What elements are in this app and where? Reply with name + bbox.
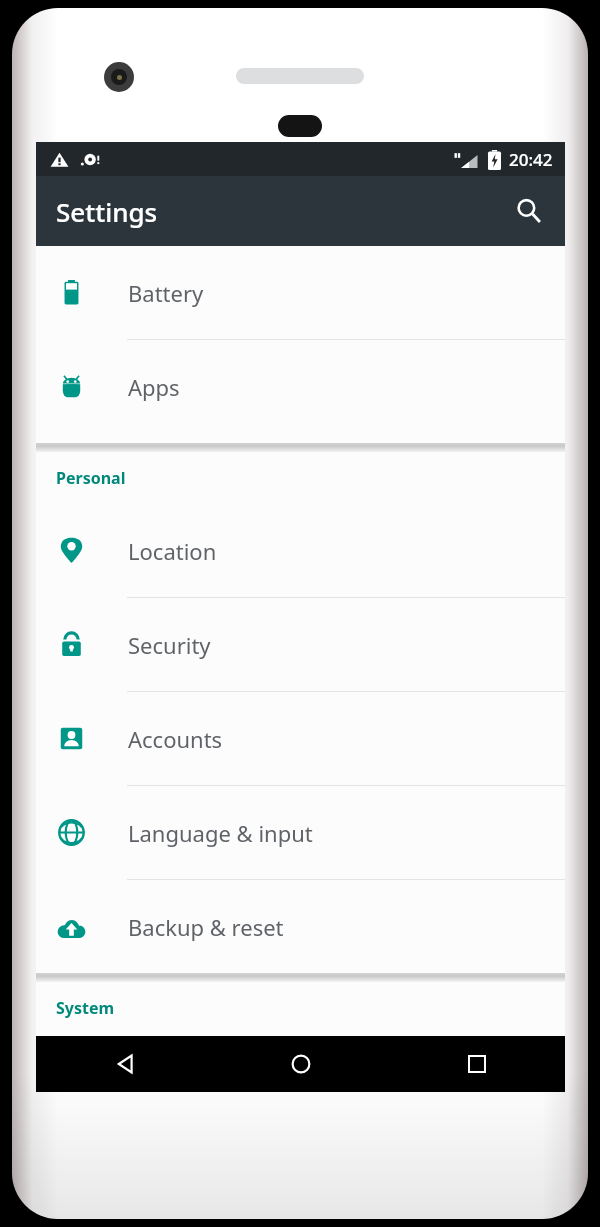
button[interactable]: Recent apps <box>389 1036 565 1092</box>
button[interactable]: Back <box>36 1036 213 1092</box>
button[interactable]: Location <box>36 504 565 598</box>
staticText: Apps <box>128 372 180 402</box>
staticText: Battery <box>128 278 204 308</box>
staticText: System <box>56 997 115 1019</box>
staticText: Security <box>128 630 211 660</box>
button[interactable]: Language & input <box>36 786 565 880</box>
button[interactable]: Accounts <box>36 692 565 786</box>
staticText: Personal <box>56 467 126 489</box>
staticText: Settings <box>56 194 158 229</box>
button[interactable]: Security <box>36 598 565 692</box>
staticText: 20:42 <box>509 148 553 171</box>
button[interactable]: Home <box>213 1036 389 1092</box>
staticText: Location <box>128 536 217 566</box>
button[interactable]: Apps <box>36 340 565 433</box>
staticText: Backup & reset <box>128 912 284 942</box>
button[interactable]: Battery <box>36 246 565 340</box>
button[interactable]: Backup & reset <box>36 880 565 973</box>
button[interactable]: Search <box>505 187 553 235</box>
staticText: Language & input <box>128 818 313 848</box>
staticText: Accounts <box>128 724 223 754</box>
